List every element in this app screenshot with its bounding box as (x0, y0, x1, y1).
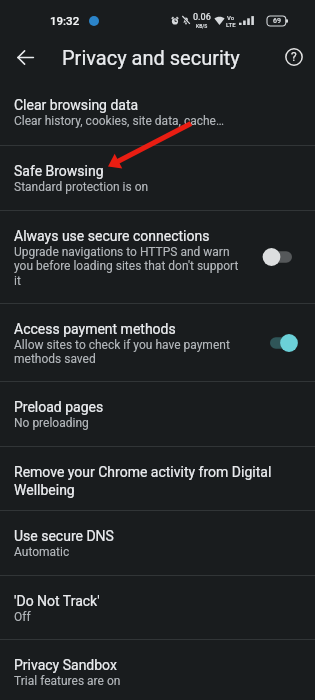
staticText: Clear browsing data (14, 97, 139, 113)
button[interactable]: Privacy Sandbox (0, 640, 315, 700)
button[interactable]: Toggle off (261, 246, 292, 268)
staticText: Access payment methods (14, 321, 176, 337)
staticText: Use secure DNS (14, 528, 114, 544)
staticText: Off (14, 610, 31, 624)
button[interactable]: 'Do Not Track' (0, 576, 315, 639)
staticText: Trial features are on (14, 674, 121, 688)
button[interactable]: Help (277, 40, 311, 74)
staticText: 19:32 (50, 14, 80, 27)
staticText: KB/S (196, 23, 208, 29)
staticText: Safe Browsing (14, 163, 104, 179)
staticText: Upgrade navigations to HTTPS and warn yo… (14, 245, 245, 288)
button[interactable]: Safe Browsing (0, 146, 315, 210)
button[interactable]: Access payment methods (0, 304, 315, 381)
button[interactable]: Always use secure connections (0, 211, 315, 303)
staticText: 69 (273, 17, 281, 25)
button[interactable]: Toggle on (261, 332, 292, 354)
button[interactable]: Back (14, 46, 36, 68)
staticText: Preload pages (14, 399, 104, 415)
button[interactable]: Remove your Chrome activity from Digital… (0, 447, 315, 510)
staticText: No preloading (14, 416, 89, 430)
staticText: 0.06 (193, 12, 211, 23)
staticText: Clear history, cookies, site data, cache… (14, 114, 225, 128)
staticText: Remove your Chrome activity from Digital… (14, 464, 301, 499)
button[interactable]: Use secure DNS (0, 511, 315, 575)
staticText: 'Do Not Track' (14, 593, 100, 609)
button[interactable]: Preload pages (0, 382, 315, 446)
staticText: Privacy Sandbox (14, 657, 117, 673)
staticText: Allow sites to check if you have payment… (14, 338, 245, 366)
staticText: Standard protection is on (14, 180, 149, 194)
button[interactable]: Clear browsing data (0, 80, 315, 145)
staticText: LTE (226, 21, 236, 28)
staticText: ? (291, 50, 297, 64)
staticText: Always use secure connections (14, 228, 210, 244)
staticText: Privacy and security (62, 46, 240, 69)
staticText: Automatic (14, 545, 70, 559)
staticText: Vo (227, 14, 235, 21)
